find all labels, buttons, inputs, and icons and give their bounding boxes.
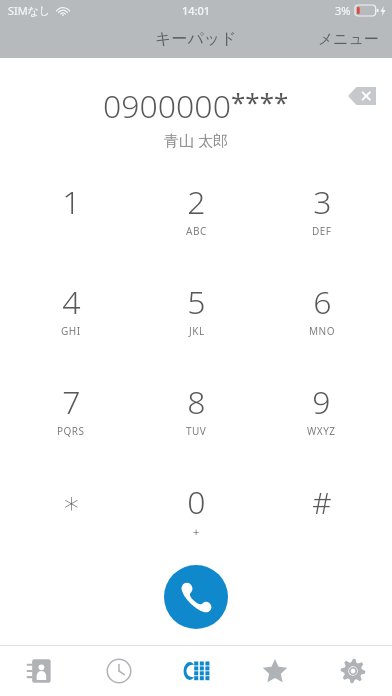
staticText: 0 [187, 480, 206, 524]
staticText: 4 [62, 280, 81, 324]
button[interactable]: 9 [259, 359, 384, 459]
button[interactable]: メニュー [306, 24, 392, 55]
staticText: 7 [62, 380, 81, 424]
staticText: 0900000 [103, 84, 231, 128]
button[interactable]: 6 [259, 259, 384, 359]
staticText: 8 [187, 380, 206, 424]
staticText: キーパッド [155, 29, 237, 49]
staticText: PQRS [57, 424, 85, 438]
staticText: メニュー [318, 30, 380, 49]
staticText: MNO [309, 324, 335, 338]
staticText: + [193, 524, 200, 539]
button[interactable]: 3 [259, 158, 384, 259]
staticText: 1 [62, 180, 81, 224]
button[interactable]: 0 [134, 459, 259, 559]
staticText: 3% [335, 3, 351, 18]
button[interactable]: Backspace [342, 80, 382, 112]
button[interactable]: Recents [79, 646, 158, 696]
button[interactable]: Contacts [0, 646, 79, 696]
button[interactable]: Settings [314, 646, 392, 696]
button[interactable]: 7 [8, 359, 134, 459]
staticText: 6 [313, 280, 332, 324]
button[interactable]: 1 [8, 158, 134, 259]
staticText: 青山 太郎 [164, 130, 228, 150]
button[interactable]: 5 [134, 259, 259, 359]
staticText: TUV [186, 424, 207, 438]
staticText: ABC [186, 224, 207, 238]
button[interactable]: Call [164, 565, 228, 629]
button[interactable]: 2 [134, 158, 259, 259]
staticText: DEF [312, 224, 332, 238]
staticText: 9 [312, 380, 331, 424]
staticText: 14:01 [182, 3, 211, 18]
button[interactable]: 8 [134, 359, 259, 459]
staticText: **** [231, 84, 289, 119]
button[interactable]: ∗ [8, 459, 134, 559]
staticText: JKL [189, 324, 205, 338]
staticText: # [312, 482, 332, 523]
staticText: 2 [187, 180, 206, 224]
button[interactable]: Keypad [158, 646, 236, 696]
staticText: 5 [187, 280, 206, 324]
button[interactable]: # [259, 459, 384, 559]
staticText: SIMなし [8, 3, 51, 18]
button[interactable]: Favorites [236, 646, 314, 696]
staticText: ∗ [62, 485, 81, 520]
button[interactable]: 4 [8, 259, 134, 359]
staticText: WXYZ [307, 424, 336, 438]
staticText: GHI [61, 324, 81, 338]
staticText: 3 [313, 180, 332, 224]
